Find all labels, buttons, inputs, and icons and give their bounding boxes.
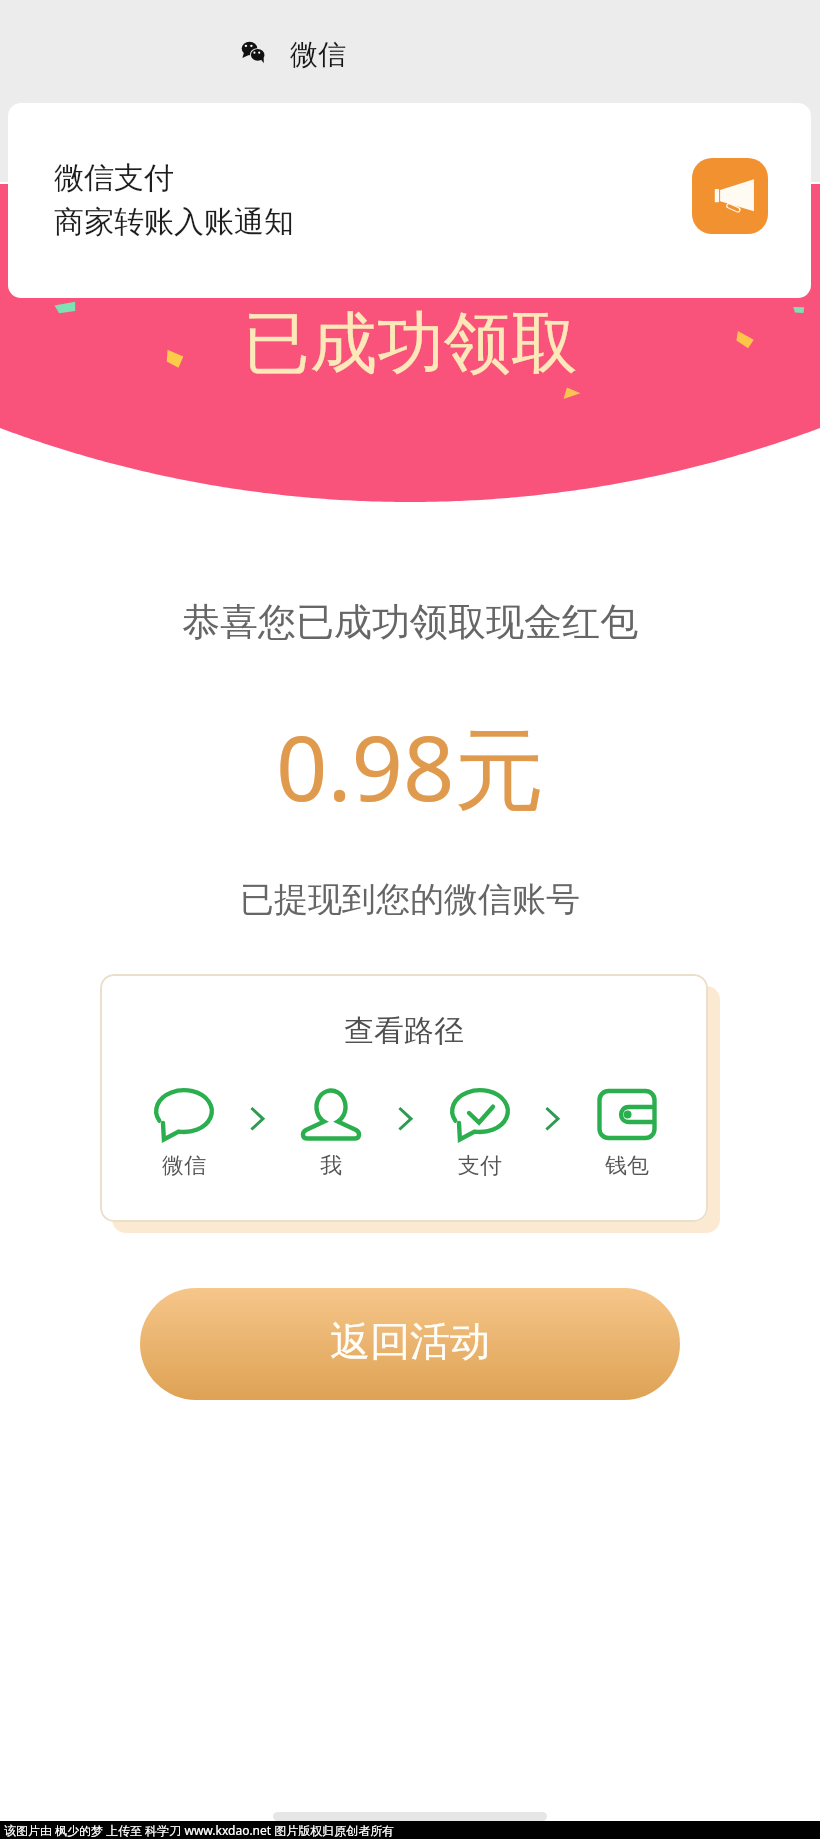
staticText: 钱包 (605, 1152, 649, 1180)
button[interactable]: 微信支付 (8, 103, 811, 298)
staticText: 我 (320, 1152, 342, 1180)
staticText: 微信 (162, 1152, 206, 1180)
staticText: 微信支付 (54, 159, 174, 197)
button[interactable]: 返回活动 (140, 1288, 680, 1400)
button[interactable]: 微信 (134, 1088, 234, 1180)
staticText: 该图片由 枫少的梦 上传至 科学刀 www.kxdao.net 图片版权归原创者… (4, 1822, 395, 1838)
staticText: 支付 (458, 1152, 502, 1180)
button[interactable]: 支付 (430, 1088, 530, 1180)
staticText: 已成功领取 (243, 301, 578, 385)
staticText: 恭喜您已成功领取现金红包 (182, 598, 638, 646)
button[interactable]: 钱包 (577, 1088, 677, 1180)
staticText: 查看路径 (344, 1012, 464, 1050)
other: 通知 (692, 158, 768, 234)
staticText: 商家转账入账通知 (54, 203, 294, 241)
staticText: 微信 (290, 37, 346, 72)
staticText: 返回活动 (330, 1316, 490, 1366)
staticText: 0.98元 (276, 705, 545, 828)
button[interactable]: 我 (281, 1088, 381, 1180)
staticText: 已提现到您的微信账号 (240, 878, 580, 921)
